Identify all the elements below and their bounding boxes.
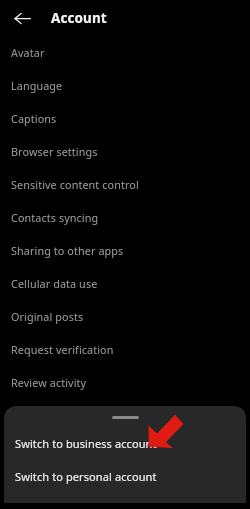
button[interactable]: Browser settings: [0, 135, 250, 168]
button[interactable]: Sharing to other apps: [0, 234, 250, 267]
button[interactable]: Review activity: [0, 366, 250, 399]
staticText: Review activity: [11, 375, 87, 390]
button[interactable]: Request verification: [0, 333, 250, 366]
button[interactable]: Captions: [0, 102, 250, 135]
staticText: Switch to business account: [15, 436, 157, 451]
staticText: Sensitive content control: [11, 177, 139, 192]
button[interactable]: Sensitive content control: [0, 168, 250, 201]
staticText: Sharing to other apps: [11, 243, 124, 258]
staticText: Browser settings: [11, 144, 98, 159]
button[interactable]: Language: [0, 69, 250, 102]
button[interactable]: Cellular data use: [0, 267, 250, 300]
button[interactable]: Back: [8, 4, 36, 32]
button[interactable]: Contacts syncing: [0, 201, 250, 234]
button[interactable]: Original posts: [0, 300, 250, 333]
staticText: Account: [51, 9, 107, 27]
button[interactable]: Switch to personal account: [4, 460, 246, 493]
staticText: Captions: [11, 111, 57, 126]
staticText: Request verification: [11, 342, 114, 357]
staticText: Original posts: [11, 309, 84, 324]
button[interactable]: Switch to business account: [4, 427, 246, 460]
staticText: Cellular data use: [11, 276, 98, 291]
staticText: Language: [11, 78, 63, 93]
staticText: Switch to personal account: [15, 469, 157, 484]
staticText: Contacts syncing: [11, 210, 99, 225]
button[interactable]: Avatar: [0, 36, 250, 69]
staticText: Avatar: [11, 45, 45, 60]
